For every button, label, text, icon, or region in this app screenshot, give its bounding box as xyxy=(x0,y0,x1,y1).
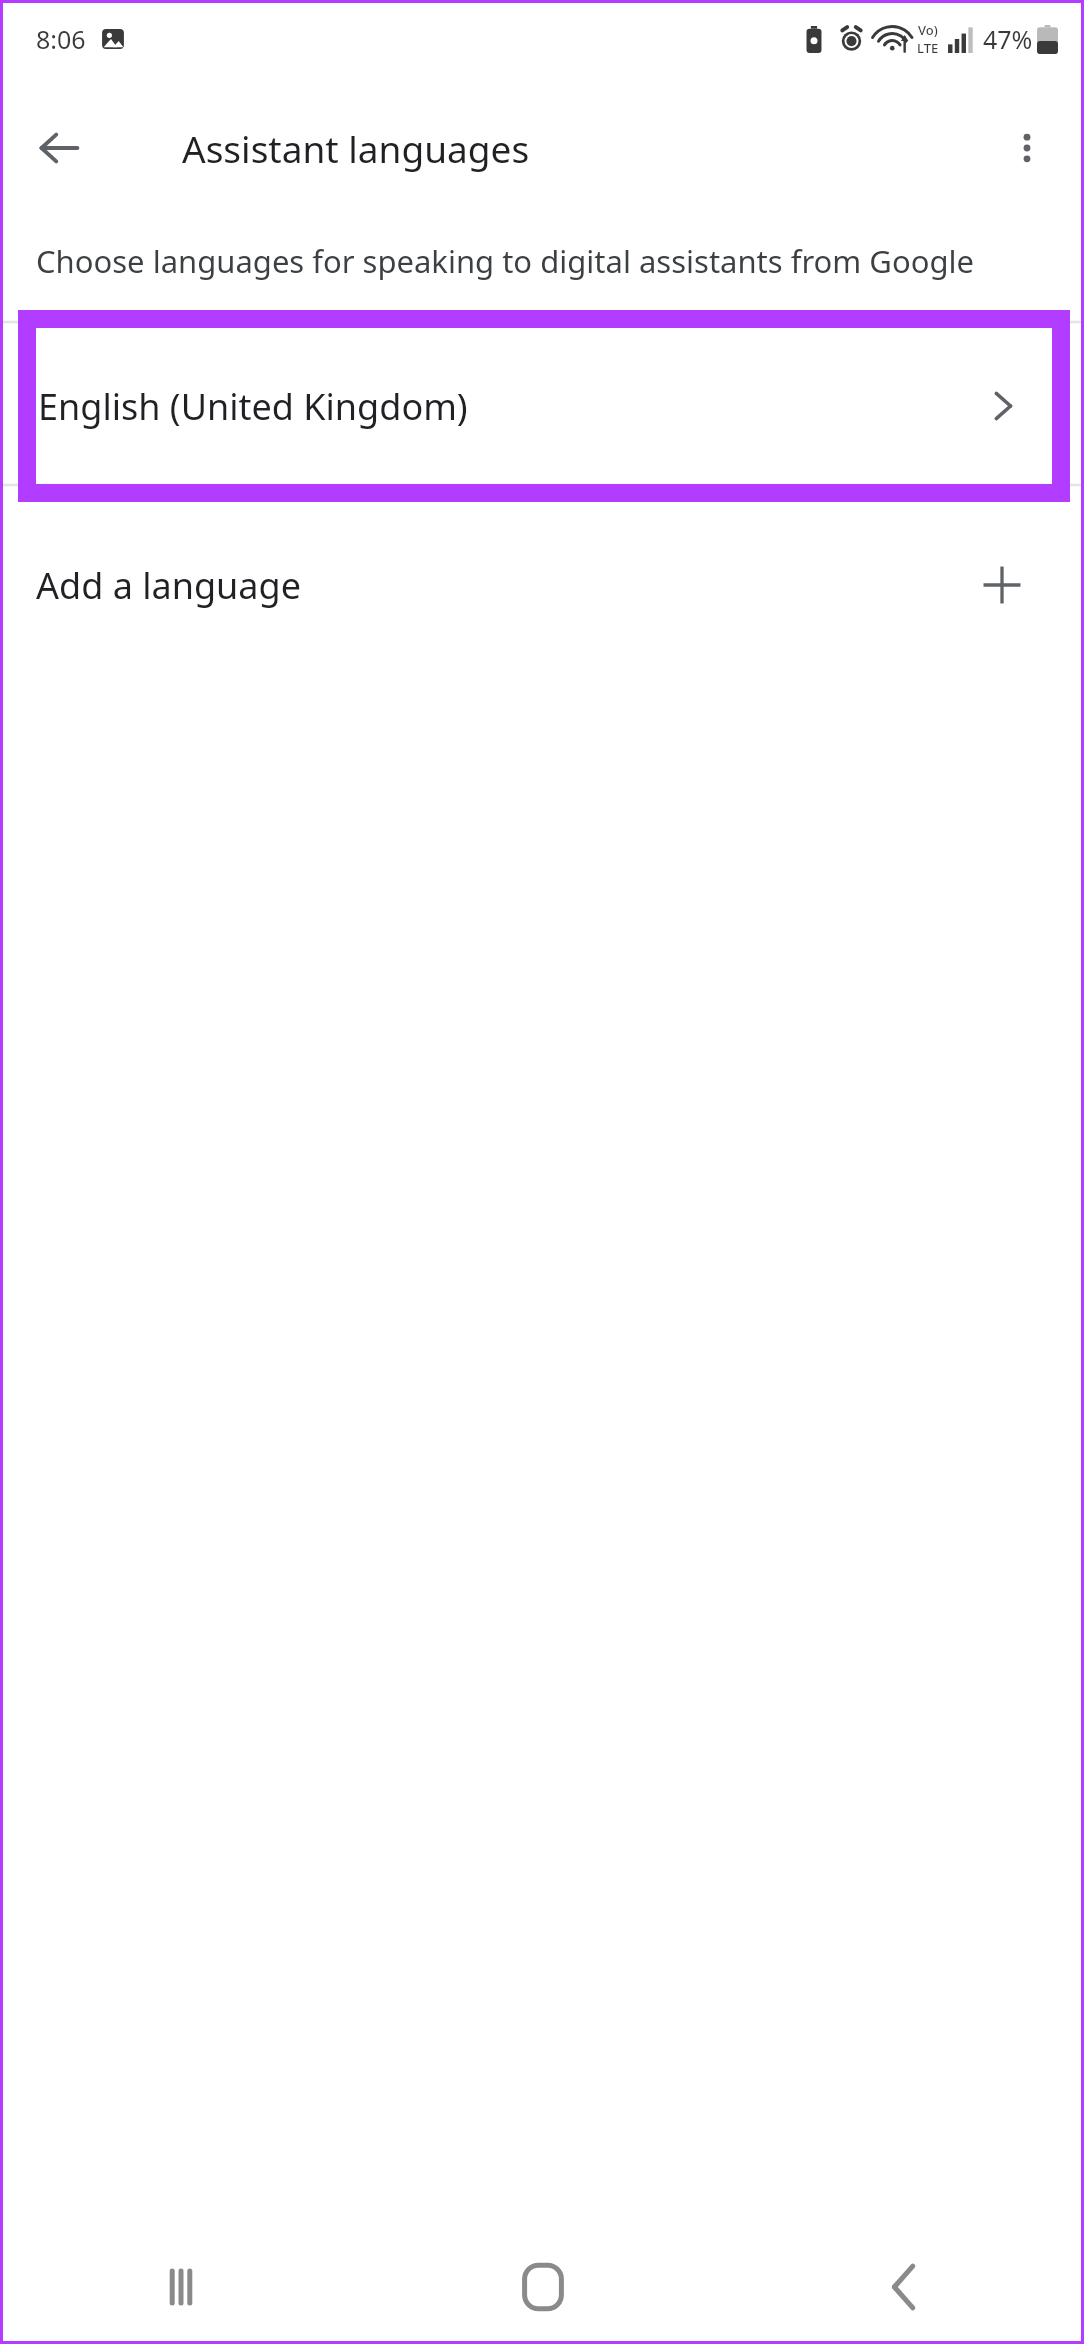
button[interactable]: Navigate up xyxy=(20,109,98,187)
staticText: Assistant languages xyxy=(182,123,530,173)
staticText: Vo) xyxy=(918,21,938,39)
button[interactable]: Back xyxy=(723,2230,1084,2344)
button[interactable]: Recent apps xyxy=(0,2230,362,2344)
staticText: 47% xyxy=(983,22,1033,56)
staticText: Choose languages for speaking to digital… xyxy=(36,240,974,282)
button[interactable]: Home xyxy=(362,2230,723,2344)
staticText: 8:06 xyxy=(36,22,86,56)
button[interactable]: More options xyxy=(988,109,1066,187)
button[interactable]: English (United Kingdom) xyxy=(18,310,1070,502)
staticText: LTE xyxy=(917,39,939,57)
staticText: English (United Kingdom) xyxy=(38,382,468,431)
button[interactable]: Add a language xyxy=(0,502,1084,668)
staticText: Add a language xyxy=(36,561,301,610)
